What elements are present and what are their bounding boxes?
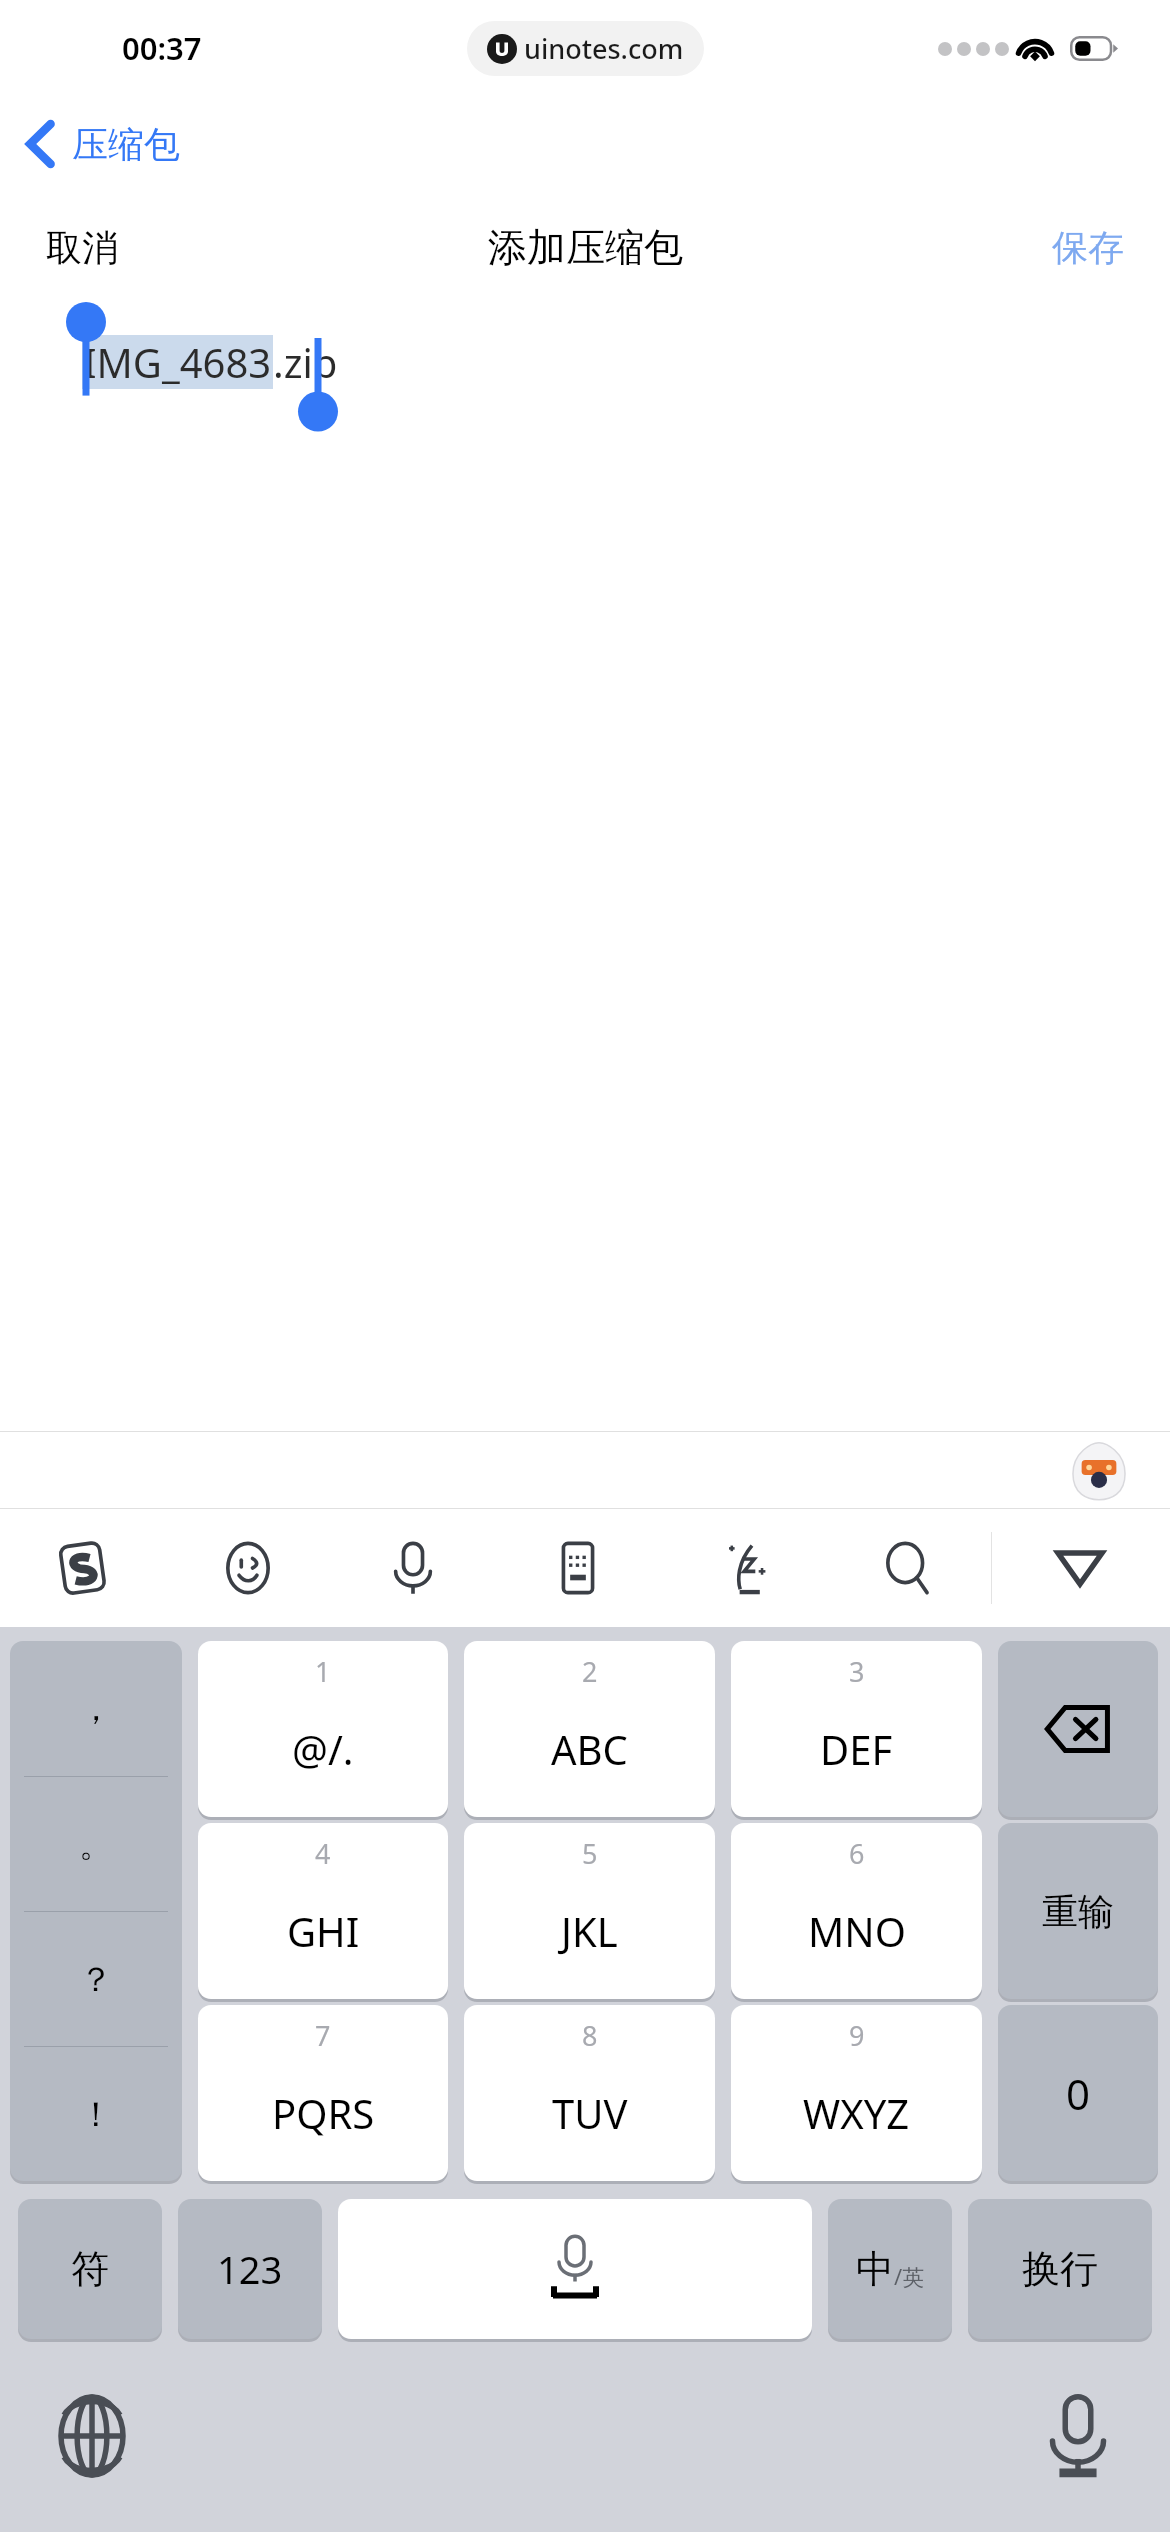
button[interactable]: 2: [464, 1641, 715, 1817]
button[interactable]: ，: [10, 1641, 182, 2181]
button[interactable]: 3: [731, 1641, 982, 1817]
button[interactable]: 6: [731, 1823, 982, 1999]
button[interactable]: 换行: [968, 2199, 1152, 2339]
button[interactable]: Space: [338, 2199, 812, 2339]
button[interactable]: Search: [825, 1509, 990, 1627]
staticText: ABC: [551, 1722, 628, 1776]
staticText: 6: [849, 1835, 865, 1872]
staticText: MNO: [808, 1904, 906, 1958]
staticText: PQRS: [272, 2086, 375, 2140]
button[interactable]: Keyboard layout: [495, 1509, 660, 1627]
staticText: 8: [582, 2017, 598, 2054]
staticText: ，: [79, 1687, 113, 1730]
staticText: 4: [315, 1835, 331, 1872]
button[interactable]: Emoji: [165, 1509, 330, 1627]
staticText: 添加压缩包: [488, 223, 683, 272]
staticText: IMG_4683: [83, 335, 272, 389]
staticText: DEF: [820, 1722, 893, 1776]
button[interactable]: 压缩包: [26, 96, 1170, 192]
button[interactable]: 9: [731, 2005, 982, 2181]
staticText: 123: [217, 2243, 283, 2295]
staticText: 换行: [1022, 2245, 1098, 2293]
staticText: 0: [1066, 2065, 1091, 2122]
staticText: 2: [582, 1653, 598, 1690]
staticText: 压缩包: [72, 122, 180, 167]
staticText: ！: [79, 2093, 113, 2136]
staticText: 1: [315, 1653, 331, 1690]
button[interactable]: Hide keyboard: [990, 1509, 1170, 1627]
button[interactable]: Dictation: [1034, 2392, 1122, 2480]
staticText: JKL: [561, 1904, 618, 1958]
button[interactable]: Voice: [330, 1509, 495, 1627]
staticText: 。: [79, 1823, 113, 1866]
staticText: 中: [856, 2245, 894, 2293]
staticText: GHI: [287, 1904, 360, 1958]
button[interactable]: 8: [464, 2005, 715, 2181]
staticText: /英: [894, 2261, 925, 2291]
button[interactable]: 4: [198, 1823, 448, 1999]
button[interactable]: 取消: [46, 225, 118, 270]
button[interactable]: 重输: [998, 1823, 1158, 1999]
button[interactable]: 中: [828, 2199, 952, 2339]
button[interactable]: 5: [464, 1823, 715, 1999]
button[interactable]: 0: [998, 2005, 1158, 2181]
staticText: WXYZ: [803, 2086, 910, 2140]
button[interactable]: 保存: [1052, 225, 1124, 270]
staticText: 符: [71, 2245, 109, 2293]
button[interactable]: Handwriting: [660, 1509, 825, 1627]
staticText: 5: [582, 1835, 598, 1872]
staticText: 00:37: [122, 27, 202, 69]
button[interactable]: 符: [18, 2199, 162, 2339]
staticText: uinotes.com: [524, 30, 684, 67]
button[interactable]: 1: [198, 1641, 448, 1817]
staticText: .zip: [273, 335, 338, 389]
button[interactable]: Sogou logo: [1068, 1439, 1130, 1501]
staticText: 3: [849, 1653, 865, 1690]
button[interactable]: Delete: [998, 1641, 1158, 1817]
staticText: TUV: [552, 2086, 628, 2140]
button[interactable]: Switch keyboard: [48, 2392, 136, 2480]
button[interactable]: 123: [178, 2199, 322, 2339]
staticText: 9: [849, 2017, 865, 2054]
button[interactable]: Sogou: [0, 1509, 165, 1627]
staticText: 7: [315, 2017, 331, 2054]
button[interactable]: 7: [198, 2005, 448, 2181]
button[interactable]: IMG_4683: [0, 302, 1170, 422]
staticText: 重输: [1042, 1889, 1114, 1934]
staticText: @/.: [292, 1722, 354, 1776]
staticText: ？: [79, 1958, 113, 2001]
